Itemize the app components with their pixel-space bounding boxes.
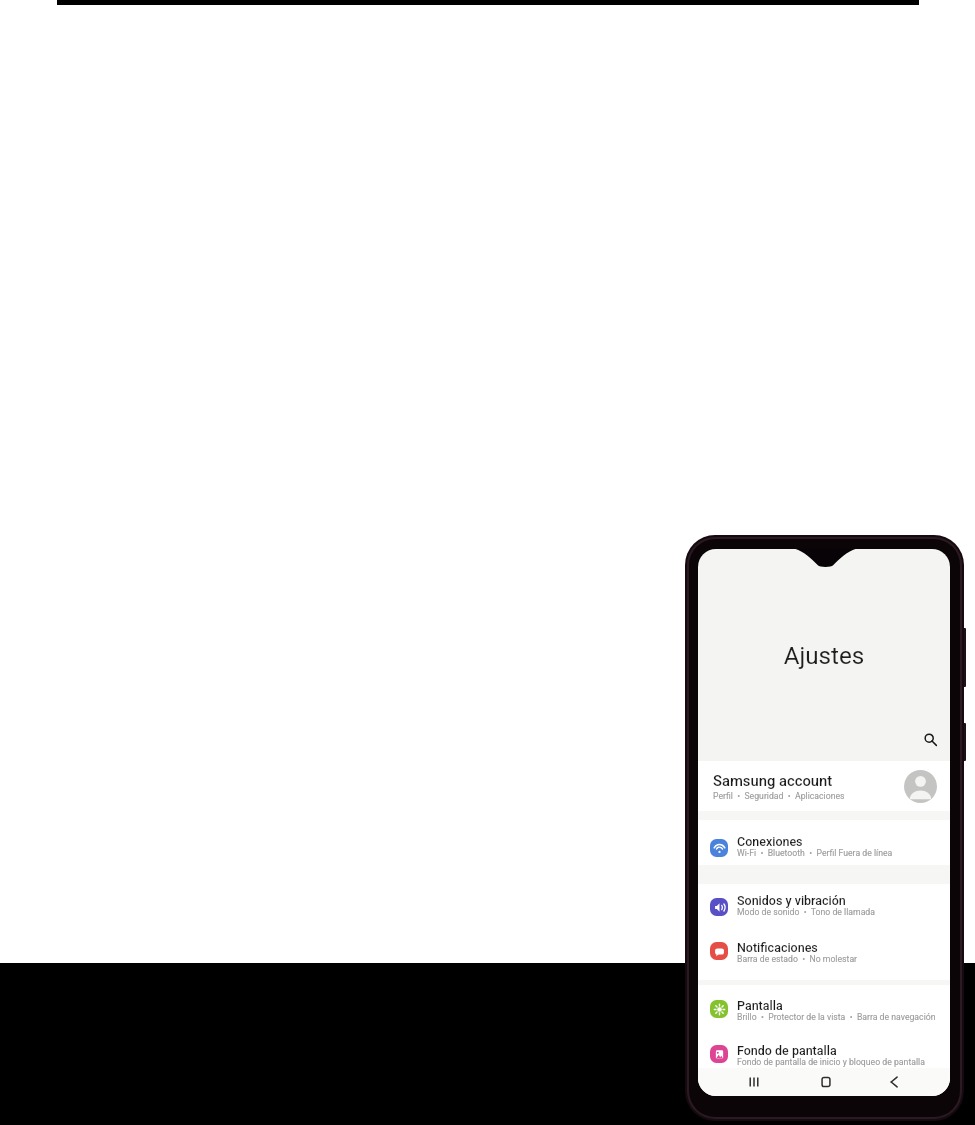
- button[interactable]: Atrás: [878, 1068, 909, 1096]
- button[interactable]: Samsung account: [698, 761, 950, 811]
- button[interactable]: Inicio: [810, 1068, 841, 1096]
- staticText: Wi-Fi • Bluetooth • Perfil Fuera de líne…: [737, 848, 893, 858]
- staticText: Modo de sonido • Tono de llamada: [737, 907, 875, 917]
- staticText: Samsung account: [713, 772, 833, 789]
- staticText: Perfil • Seguridad • Aplicaciones: [713, 791, 845, 801]
- button[interactable]: Recientes: [738, 1068, 769, 1096]
- staticText: Fondo de pantalla: [737, 1043, 837, 1058]
- staticText: Notificaciones: [737, 940, 818, 955]
- staticText: Pantalla: [737, 998, 783, 1013]
- button[interactable]: Buscar: [919, 728, 941, 750]
- button[interactable]: Pantalla: [698, 988, 950, 1033]
- staticText: Ajustes: [698, 642, 950, 670]
- staticText: Brillo • Protector de la vista • Barra d…: [737, 1012, 936, 1022]
- button[interactable]: Notificaciones: [698, 932, 950, 977]
- staticText: Barra de estado • No molestar: [737, 954, 858, 964]
- button[interactable]: Conexiones: [698, 820, 950, 865]
- staticText: Fondo de pantalla de inicio y bloqueo de…: [737, 1057, 925, 1067]
- staticText: Sonidos y vibración: [737, 893, 846, 908]
- staticText: Conexiones: [737, 834, 803, 849]
- button[interactable]: Fondo de pantalla: [698, 1033, 950, 1078]
- button[interactable]: Sonidos y vibración: [698, 887, 950, 932]
